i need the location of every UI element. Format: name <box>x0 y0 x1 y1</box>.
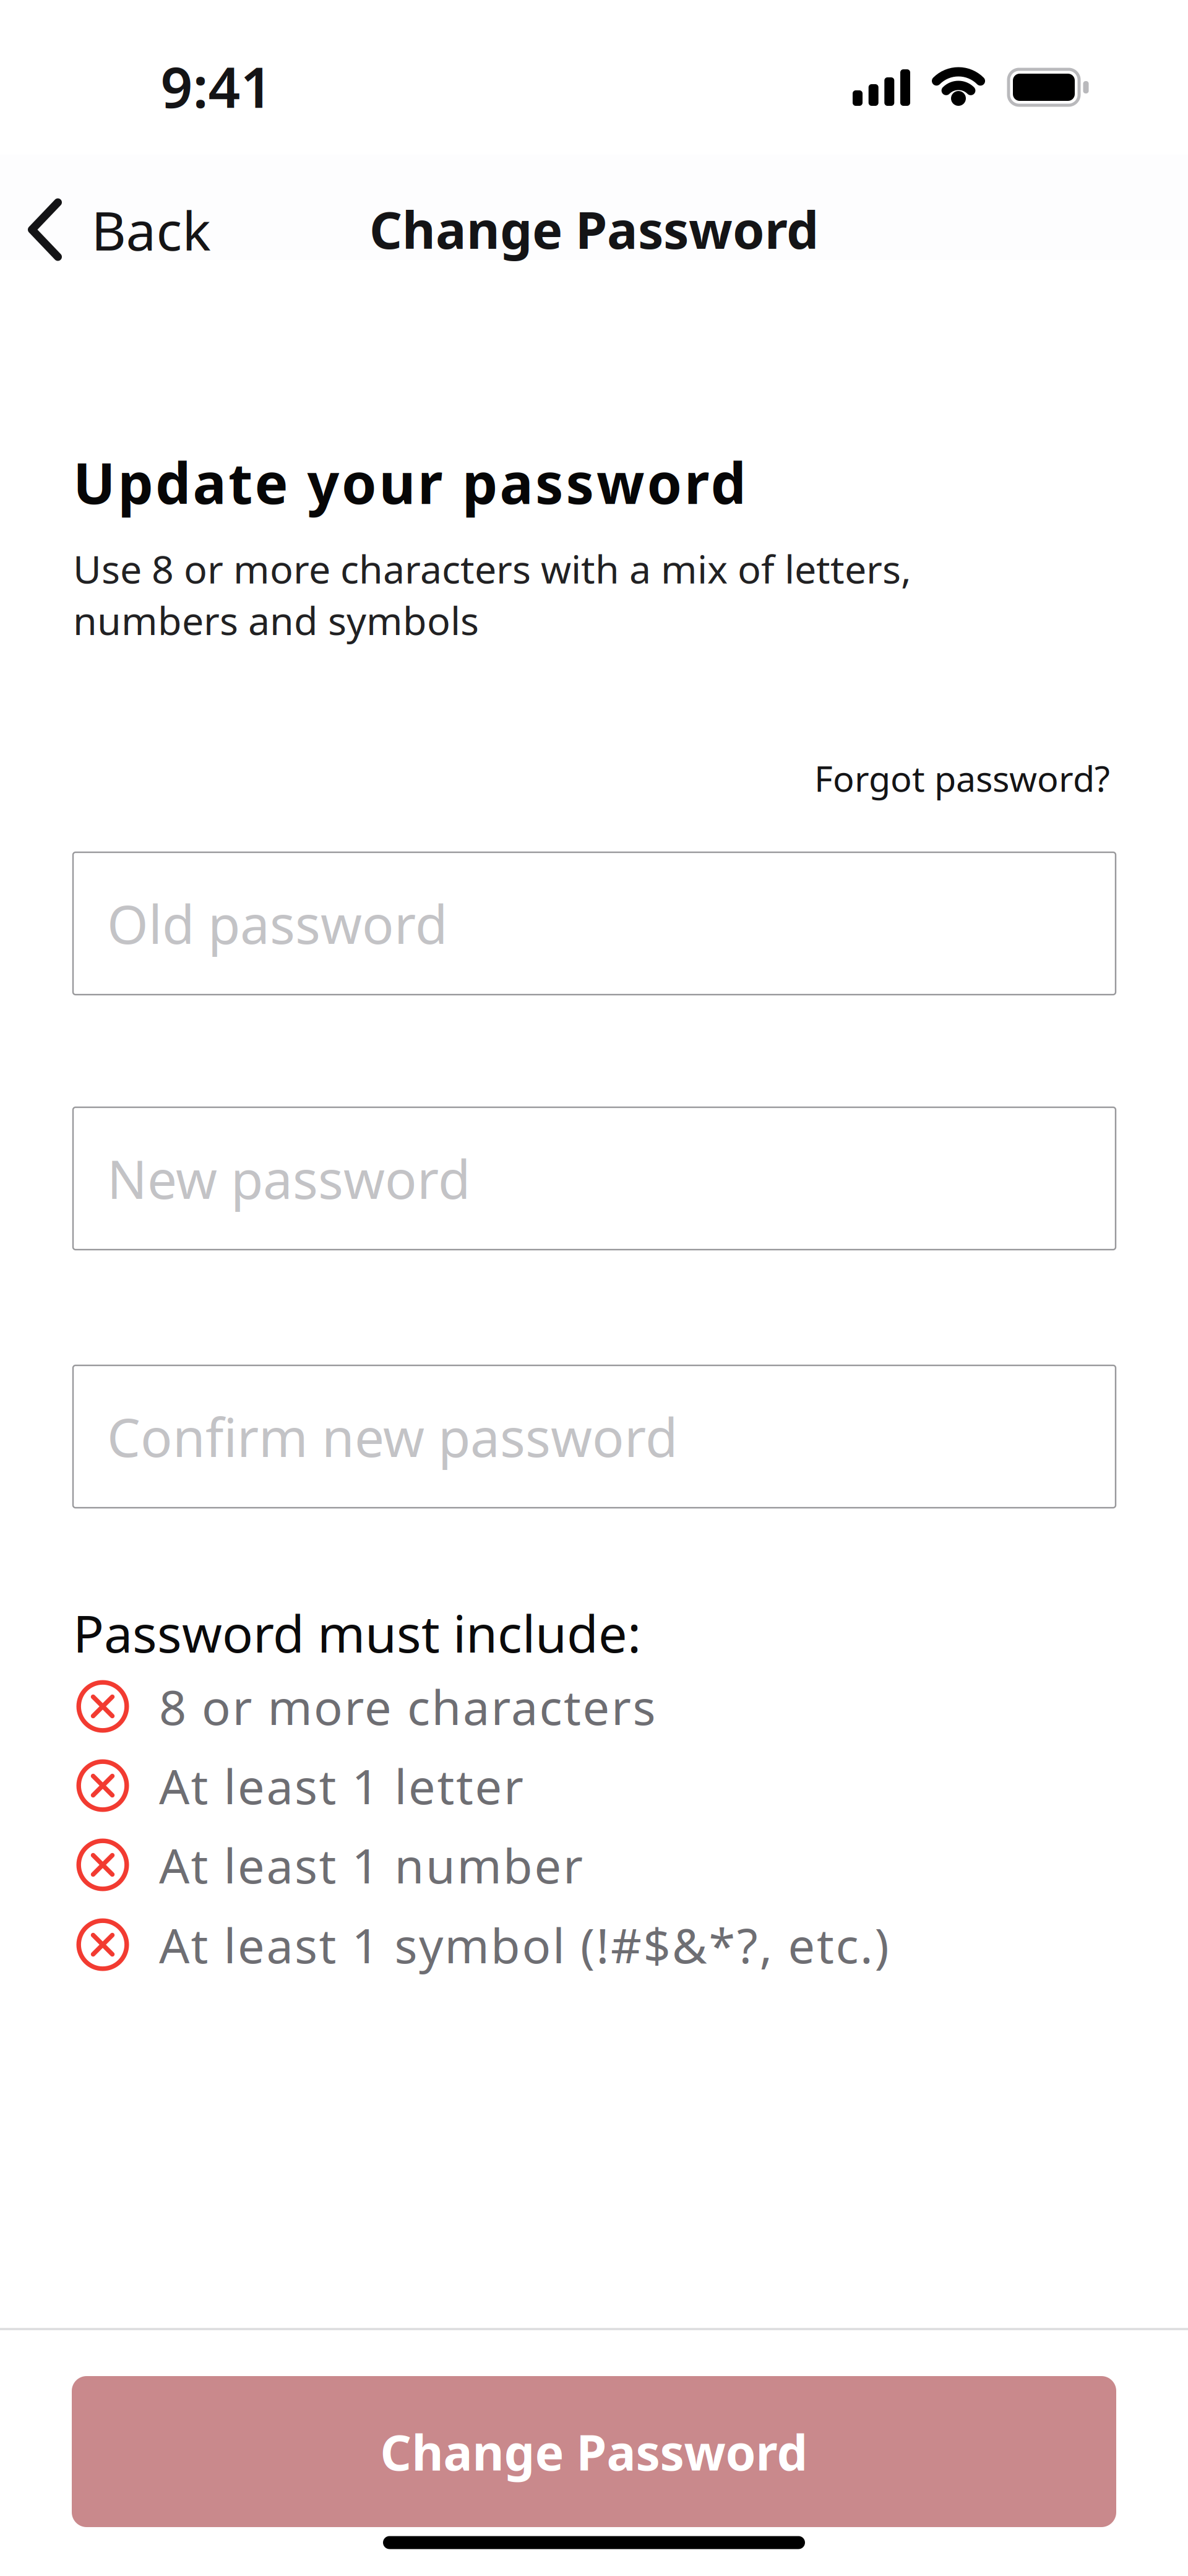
staticText: At least 1 number <box>159 1833 583 1897</box>
staticText: Change Password <box>369 195 819 263</box>
button[interactable]: Back <box>32 194 211 265</box>
staticText: Use 8 or more characters with a mix of l… <box>73 543 911 646</box>
staticText: Back <box>91 194 211 265</box>
staticText: Change Password <box>380 2419 808 2484</box>
staticText: 8 or more characters <box>159 1675 656 1738</box>
staticText: Update your password <box>73 445 746 519</box>
staticText: At least 1 letter <box>159 1754 523 1817</box>
button[interactable]: Forgot password? <box>814 754 1110 802</box>
staticText: Password must include: <box>73 1599 641 1667</box>
button[interactable]: Confirm new password <box>73 1365 1116 1508</box>
button[interactable]: Old password <box>73 852 1116 995</box>
staticText: Old password <box>107 888 447 958</box>
button[interactable]: Change Password <box>72 2376 1116 2527</box>
staticText: Confirm new password <box>107 1401 678 1472</box>
staticText: At least 1 symbol (!#$&*?, etc.) <box>159 1913 889 1977</box>
staticText: 9:41 <box>161 49 273 123</box>
staticText: New password <box>107 1143 470 1213</box>
staticText: Forgot password? <box>814 754 1110 802</box>
button[interactable]: New password <box>73 1107 1116 1250</box>
